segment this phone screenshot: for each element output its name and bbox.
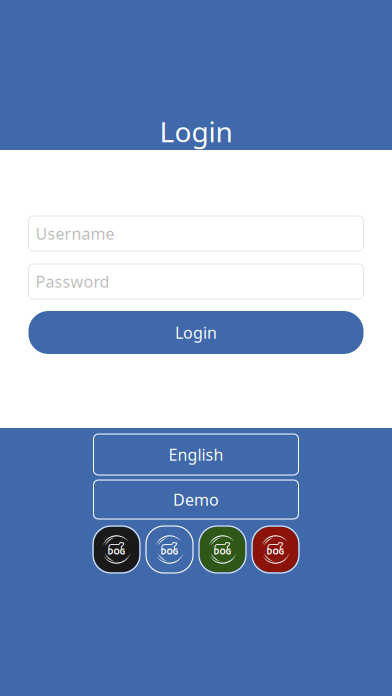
button[interactable]: Light theme	[146, 526, 193, 573]
staticText: Login	[175, 322, 217, 343]
staticText: DOG	[107, 546, 125, 557]
staticText: Login	[159, 113, 232, 150]
staticText: Password	[35, 271, 109, 292]
button[interactable]: Login	[28, 311, 363, 354]
staticText: English	[168, 444, 223, 465]
button[interactable]: English	[93, 434, 298, 475]
button[interactable]: Red theme	[252, 526, 299, 573]
staticText: DOG	[266, 546, 284, 557]
staticText: DOG	[160, 546, 178, 557]
staticText: Demo	[173, 489, 219, 510]
button[interactable]: Black theme	[93, 526, 140, 573]
staticText: Username	[35, 223, 114, 244]
button[interactable]: Demo	[93, 480, 298, 519]
button[interactable]: Green theme	[199, 526, 246, 573]
staticText: DOG	[213, 546, 231, 557]
